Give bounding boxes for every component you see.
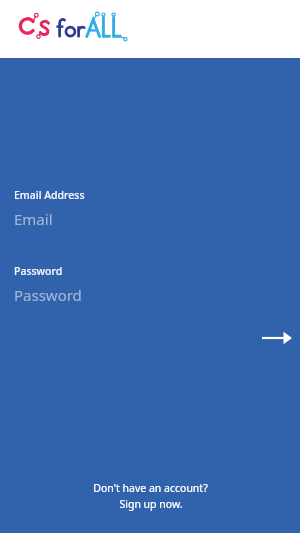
staticText: Password <box>14 285 82 305</box>
other: CSforALL logo <box>18 9 136 47</box>
button[interactable]: Password <box>0 283 300 307</box>
staticText: Don't have an account? <box>93 481 208 495</box>
staticText: Email Address <box>14 188 85 202</box>
button[interactable]: Email <box>0 207 300 231</box>
staticText: Email <box>14 209 53 229</box>
staticText: Password <box>14 264 63 278</box>
button[interactable]: Sign in <box>254 321 300 355</box>
button[interactable]: Don't have an account? <box>0 481 300 533</box>
staticText: Sign up now. <box>119 497 183 511</box>
